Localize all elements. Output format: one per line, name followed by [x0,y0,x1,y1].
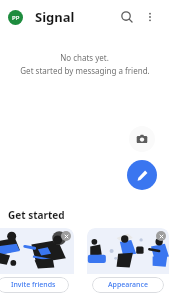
button[interactable]: Search [115,5,139,29]
button[interactable]: Dismiss [0,228,74,296]
button[interactable]: Appearance [92,277,164,293]
staticText: Get started by messaging a friend. [20,65,150,76]
staticText: No chats yet. [60,52,109,63]
button[interactable]: Camera [129,126,155,152]
staticText: PP [12,14,20,22]
button[interactable]: Dismiss [61,231,71,241]
staticText: Get started [8,208,65,222]
button[interactable]: New chat [127,160,157,190]
button[interactable]: More options [139,6,161,28]
button[interactable]: Dismiss [156,231,166,241]
button[interactable]: Invite friends [0,277,69,293]
button[interactable]: Dismiss [87,228,169,296]
staticText: Signal [35,8,75,26]
staticText: Invite friends [11,280,56,290]
button[interactable]: Profile [8,10,23,25]
staticText: Appearance [108,280,148,290]
